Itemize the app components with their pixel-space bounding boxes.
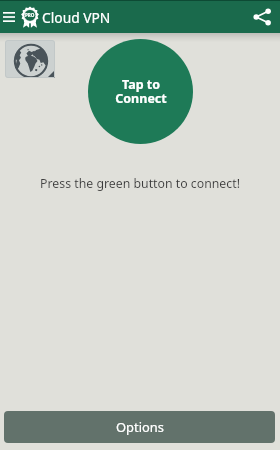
staticText: Tap to Connect <box>115 76 167 107</box>
button[interactable]: Options <box>4 411 275 443</box>
button[interactable]: Select country <box>5 40 55 78</box>
button[interactable]: Share <box>249 4 275 30</box>
staticText: Press the green button to connect! <box>0 175 280 192</box>
button[interactable]: Tap to Connect <box>88 39 193 144</box>
button[interactable]: Menu <box>1 9 17 25</box>
staticText: PRO <box>25 12 35 18</box>
staticText: Cloud VPN <box>42 8 111 27</box>
staticText: Options <box>116 418 164 436</box>
